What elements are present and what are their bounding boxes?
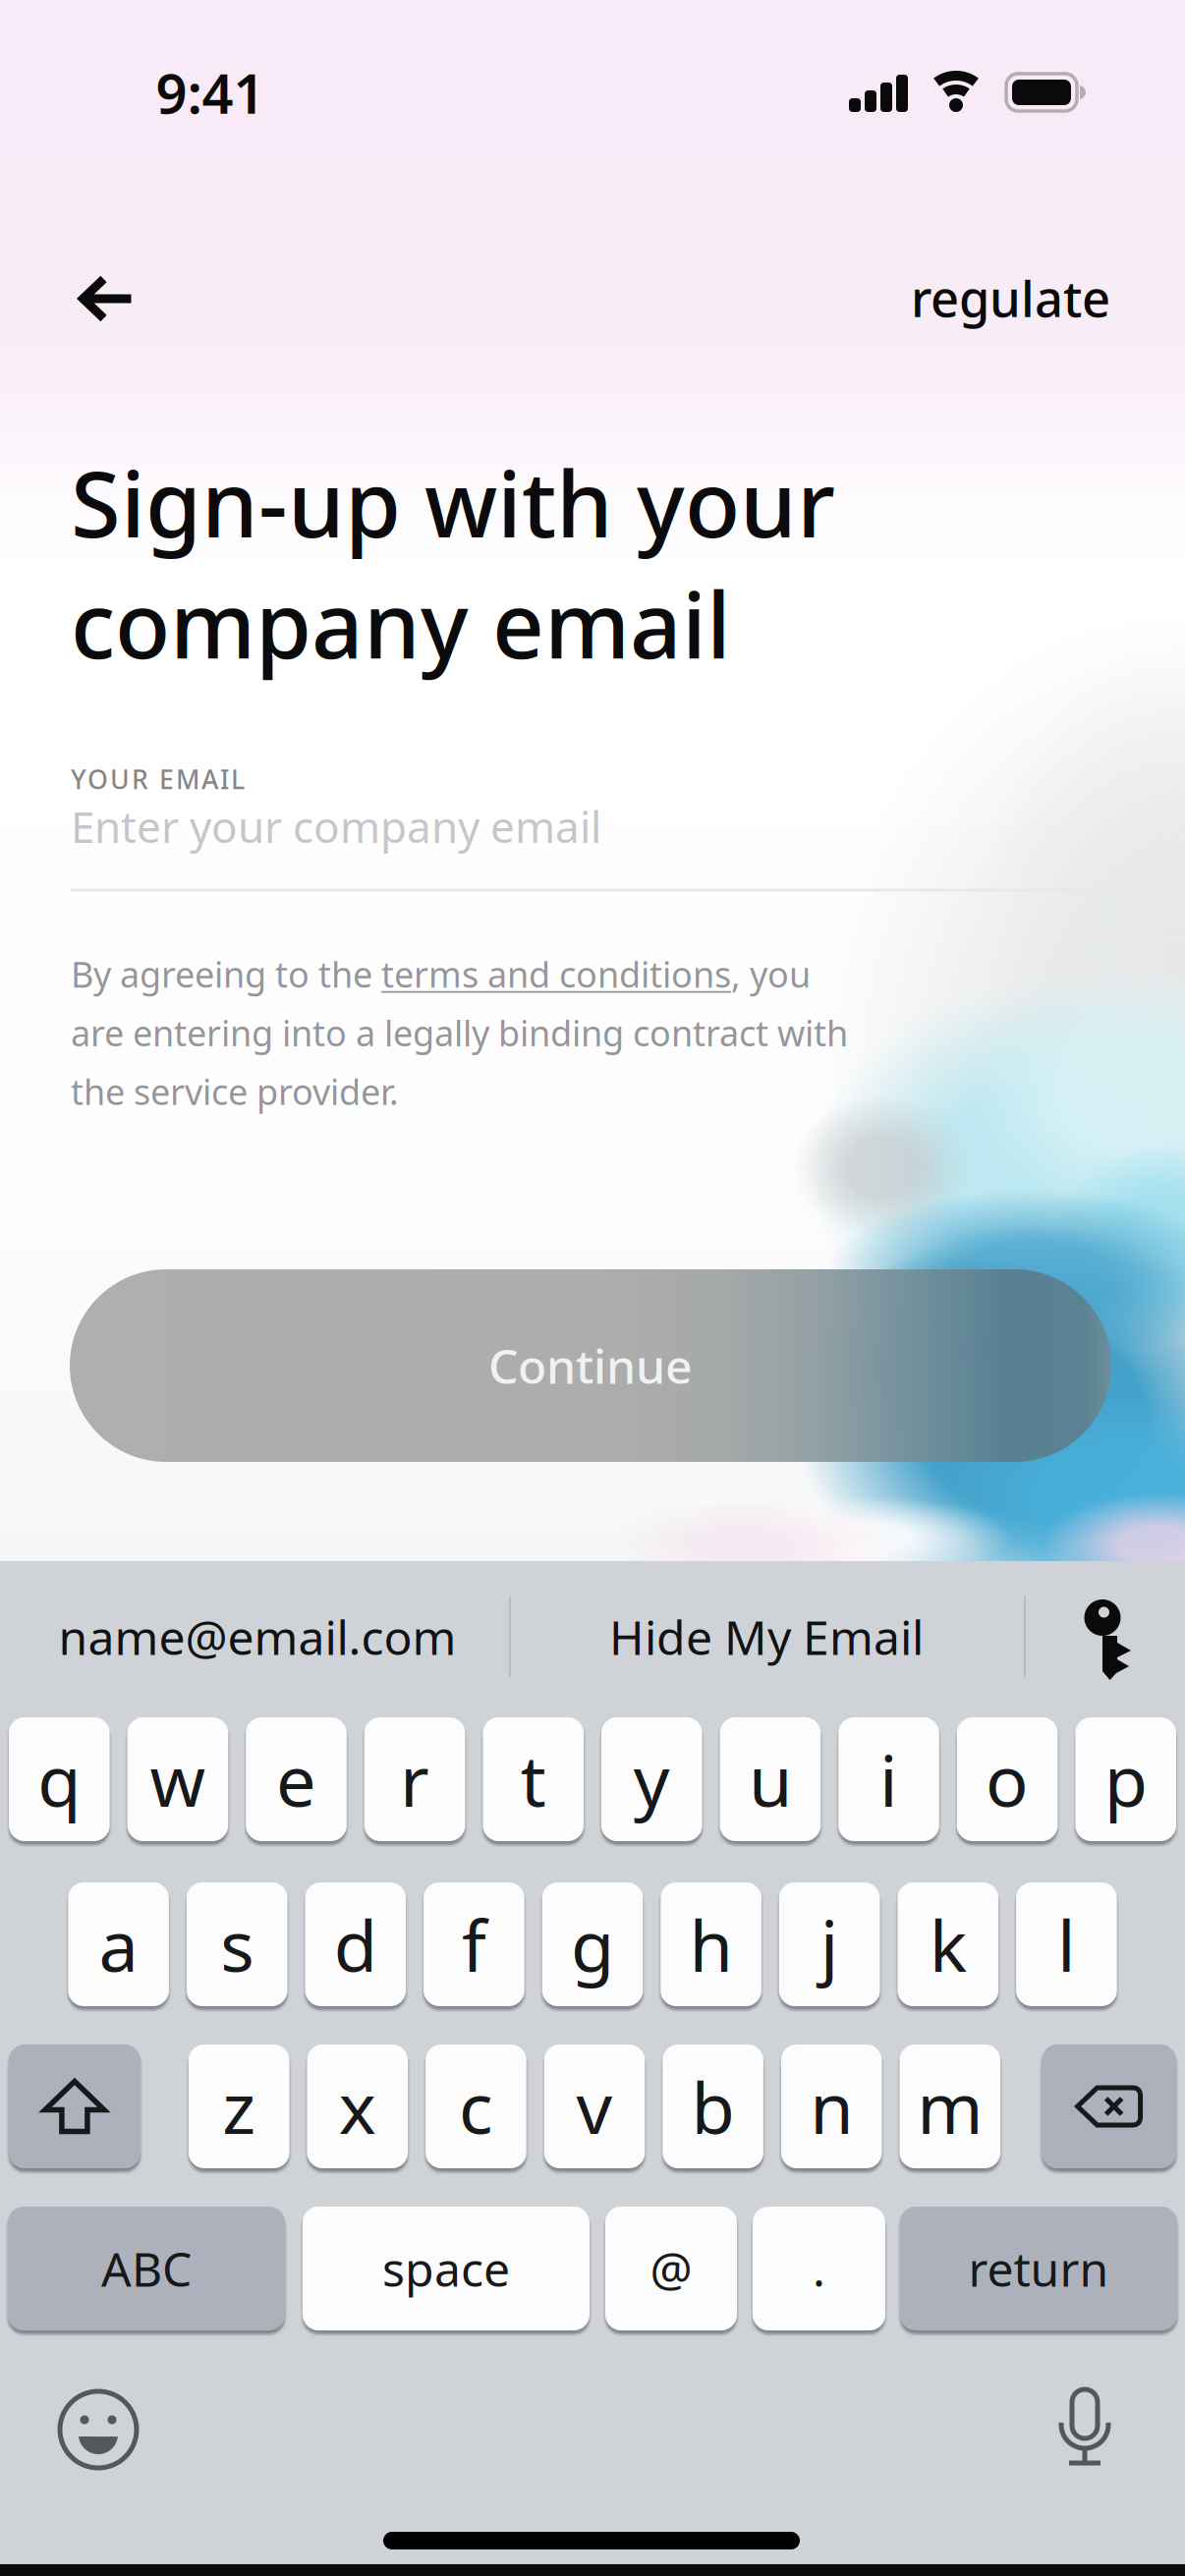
button[interactable]: v [544, 2044, 645, 2168]
button[interactable]: n [781, 2044, 882, 2168]
button[interactable]: g [542, 1882, 643, 2006]
staticText: . [813, 2237, 825, 2300]
button[interactable]: e [246, 1717, 347, 1841]
staticText: are entering into a legally binding cont… [71, 1009, 848, 1056]
staticText: x [339, 2059, 376, 2153]
staticText: r [400, 1732, 429, 1826]
button[interactable]: Passwords [1039, 1580, 1166, 1693]
button[interactable]: a [68, 1882, 169, 2006]
staticText: regulate [911, 265, 1110, 331]
staticText: Continue [488, 1334, 693, 1397]
button[interactable]: m [900, 2044, 1000, 2168]
button[interactable]: l [1016, 1882, 1117, 2006]
button[interactable]: k [898, 1882, 998, 2006]
staticText: m [917, 2059, 983, 2153]
staticText: Enter your company email [71, 798, 601, 855]
staticText: e [276, 1732, 316, 1826]
staticText: terms and conditions [381, 950, 731, 997]
button[interactable]: name@email.com [12, 1580, 503, 1693]
staticText: @ [650, 2237, 692, 2300]
button[interactable]: b [663, 2044, 763, 2168]
button[interactable]: Shift [9, 2044, 140, 2168]
staticText: company email [71, 563, 731, 683]
button[interactable]: i [838, 1717, 939, 1841]
button[interactable]: Enter your company email [71, 787, 1114, 866]
staticText: return [968, 2237, 1109, 2300]
button[interactable]: j [779, 1882, 880, 2006]
button[interactable]: @ [605, 2207, 737, 2330]
staticText: w [150, 1732, 206, 1826]
staticText: p [1104, 1732, 1147, 1826]
staticText: space [382, 2237, 510, 2300]
button[interactable]: z [189, 2044, 289, 2168]
button[interactable]: c [426, 2044, 526, 2168]
staticText: y [634, 1732, 670, 1826]
staticText: YOUR EMAIL [71, 762, 245, 796]
staticText: c [459, 2059, 493, 2153]
button[interactable]: w [127, 1717, 228, 1841]
staticText: Hide My Email [609, 1605, 924, 1668]
button[interactable]: terms and conditions [381, 950, 731, 997]
button[interactable]: h [661, 1882, 761, 2006]
staticText: 9:41 [156, 56, 265, 129]
button[interactable]: d [305, 1882, 406, 2006]
staticText: v [576, 2059, 613, 2153]
staticText: t [520, 1732, 546, 1826]
button[interactable]: ABC [8, 2207, 285, 2330]
staticText: l [1057, 1897, 1076, 1991]
button[interactable]: o [957, 1717, 1058, 1841]
staticText: name@email.com [58, 1605, 456, 1668]
staticText: n [810, 2059, 853, 2153]
staticText: ABC [101, 2237, 192, 2300]
button[interactable]: . [753, 2207, 885, 2330]
staticText: g [571, 1897, 614, 1991]
staticText: b [691, 2059, 735, 2153]
button[interactable]: Emoji [44, 2376, 152, 2484]
button[interactable]: Delete [1042, 2044, 1176, 2168]
button[interactable]: s [187, 1882, 287, 2006]
button[interactable]: x [307, 2044, 408, 2168]
button[interactable]: p [1075, 1717, 1176, 1841]
staticText: f [462, 1897, 486, 1991]
staticText: h [689, 1897, 733, 1991]
staticText: d [334, 1897, 377, 1991]
staticText: i [879, 1732, 898, 1826]
button[interactable]: Back [53, 250, 161, 348]
button[interactable]: Dictation [1031, 2376, 1139, 2484]
staticText: o [986, 1732, 1029, 1826]
staticText: a [99, 1897, 138, 1991]
button[interactable]: u [720, 1717, 821, 1841]
button[interactable]: f [424, 1882, 524, 2006]
button[interactable]: space [303, 2207, 590, 2330]
staticText: Sign-up with your [71, 442, 835, 562]
staticText: u [749, 1732, 792, 1826]
staticText: s [220, 1897, 254, 1991]
button[interactable]: Hide My Email [550, 1580, 983, 1693]
staticText: j [820, 1897, 839, 1991]
staticText: q [38, 1732, 81, 1826]
button[interactable]: Continue [70, 1269, 1111, 1462]
staticText: By agreeing to the [71, 950, 381, 997]
button[interactable]: t [483, 1717, 584, 1841]
staticText: , you [731, 950, 811, 997]
staticText: z [222, 2059, 256, 2153]
button[interactable]: return [900, 2207, 1177, 2330]
staticText: the service provider. [71, 1068, 399, 1115]
staticText: k [929, 1897, 967, 1991]
button[interactable]: q [9, 1717, 110, 1841]
button[interactable]: r [364, 1717, 465, 1841]
button[interactable]: y [601, 1717, 702, 1841]
